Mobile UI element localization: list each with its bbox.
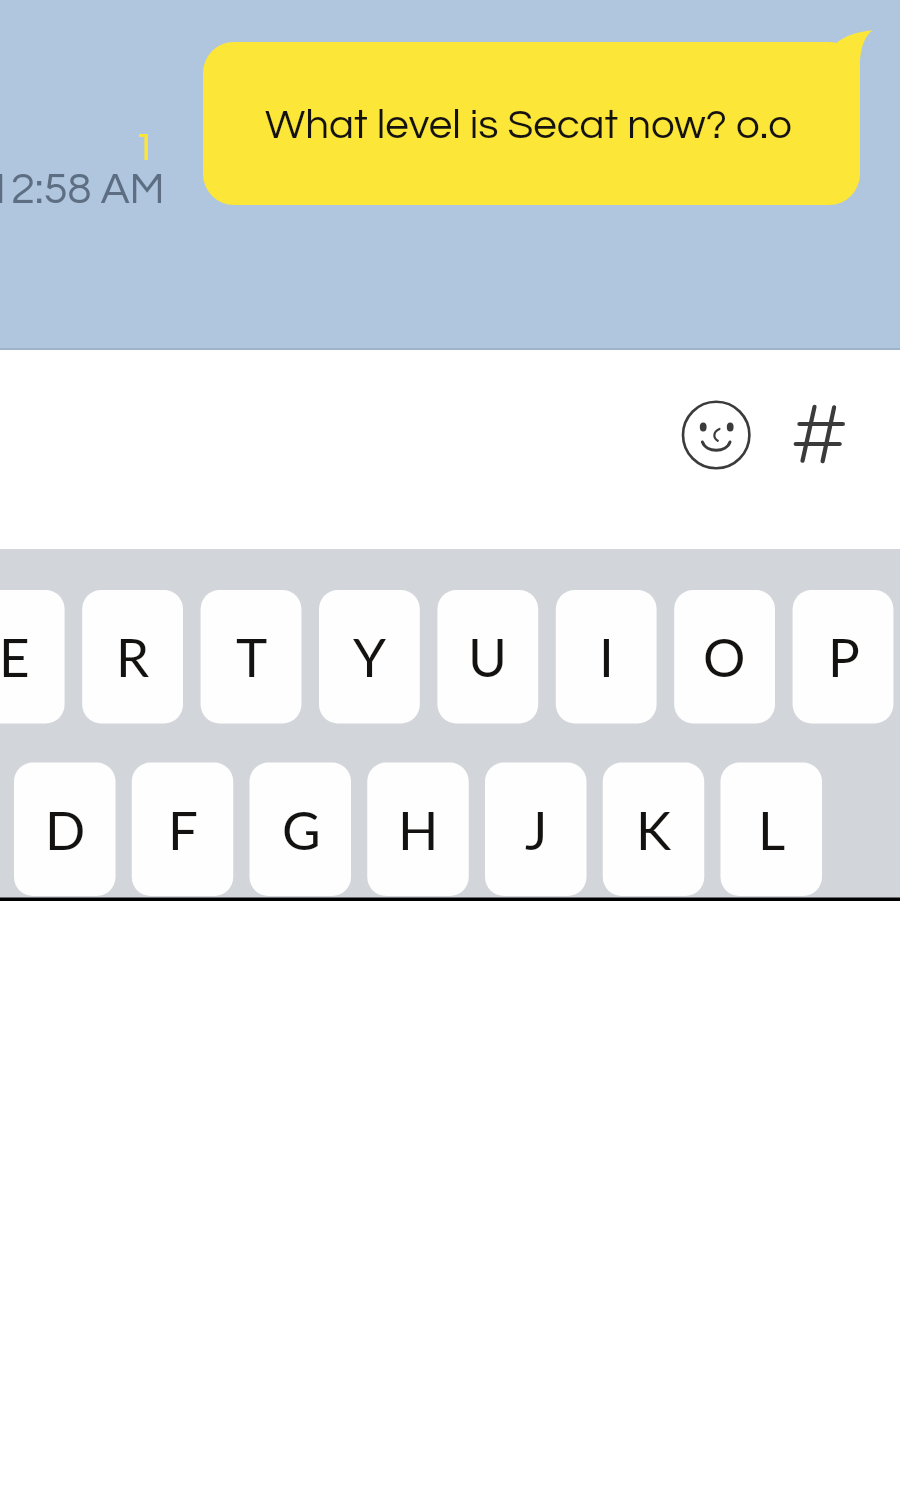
button[interactable]: P bbox=[793, 590, 894, 724]
button[interactable]: U bbox=[437, 590, 538, 724]
staticText: E bbox=[0, 625, 30, 689]
staticText: L bbox=[758, 798, 786, 862]
staticText: P bbox=[828, 625, 860, 689]
button[interactable]: H bbox=[367, 763, 469, 897]
staticText: G bbox=[282, 798, 321, 862]
button[interactable]: O bbox=[674, 590, 775, 724]
staticText: T bbox=[236, 625, 268, 689]
button[interactable]: Emoji bbox=[678, 397, 755, 474]
button[interactable]: D bbox=[14, 763, 116, 897]
button[interactable]: I bbox=[556, 590, 657, 724]
button[interactable]: J bbox=[485, 763, 587, 897]
staticText: I bbox=[599, 625, 614, 689]
staticText: R bbox=[116, 625, 150, 689]
staticText: D bbox=[45, 798, 86, 862]
staticText: J bbox=[525, 798, 548, 862]
button[interactable]: R bbox=[82, 590, 183, 724]
staticText: 1 bbox=[134, 128, 156, 168]
button[interactable]: K bbox=[603, 763, 705, 897]
staticText: F bbox=[168, 798, 198, 862]
button[interactable]: G bbox=[250, 763, 352, 897]
staticText: Y bbox=[353, 625, 387, 689]
staticText: U bbox=[468, 625, 507, 689]
button[interactable]: E bbox=[0, 590, 65, 724]
staticText: K bbox=[636, 798, 672, 862]
staticText: H bbox=[398, 798, 439, 862]
button[interactable]: F bbox=[132, 763, 234, 897]
staticText: What level is Secat now? o.o bbox=[265, 104, 792, 147]
button[interactable]: T bbox=[201, 590, 302, 724]
button[interactable]: L bbox=[721, 763, 823, 897]
button[interactable]: Hashtag bbox=[792, 402, 848, 458]
button[interactable]: Y bbox=[319, 590, 420, 724]
staticText: O bbox=[703, 625, 746, 689]
staticText: 12:58 AM bbox=[0, 167, 165, 212]
